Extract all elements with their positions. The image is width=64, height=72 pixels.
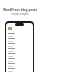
staticText: made simple (11, 12, 29, 16)
staticText: WordPress blog posts (2, 8, 38, 12)
